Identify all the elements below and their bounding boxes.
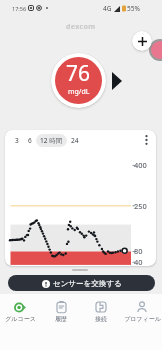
staticText: 接続 bbox=[95, 315, 107, 323]
button[interactable]: 履歴 bbox=[41, 294, 81, 350]
button[interactable]: More options bbox=[138, 132, 154, 148]
staticText: dexcom bbox=[66, 22, 96, 32]
staticText: 250 bbox=[134, 201, 147, 211]
staticText: mg/dL bbox=[68, 87, 90, 97]
button[interactable]: センサーを交換する bbox=[8, 275, 155, 291]
button[interactable]: 6 bbox=[27, 134, 33, 147]
staticText: 3 bbox=[15, 136, 19, 145]
button[interactable]: 接続 bbox=[81, 294, 121, 350]
staticText: 4G bbox=[103, 4, 112, 13]
staticText: 400 bbox=[134, 160, 147, 170]
button[interactable]: Profile bbox=[151, 41, 162, 59]
staticText: 17:56 bbox=[12, 5, 27, 12]
staticText: 80 bbox=[134, 246, 143, 256]
staticText: プロフィール bbox=[124, 315, 161, 323]
staticText: 24 bbox=[71, 136, 79, 145]
button[interactable]: プロフィール bbox=[122, 294, 162, 350]
staticText: 40 bbox=[134, 257, 143, 266]
button[interactable]: 12 時間 bbox=[36, 134, 67, 147]
button[interactable]: 3 bbox=[14, 134, 20, 147]
staticText: 6 bbox=[28, 136, 32, 145]
button[interactable]: グルコース bbox=[0, 294, 40, 350]
staticText: 76 bbox=[66, 59, 91, 88]
staticText: 履歴 bbox=[55, 315, 67, 323]
button[interactable]: 76 bbox=[55, 57, 102, 104]
button[interactable]: 24 bbox=[70, 134, 80, 147]
staticText: 12 時間 bbox=[40, 136, 63, 145]
staticText: センサーを交換する bbox=[53, 279, 122, 288]
staticText: 55% bbox=[127, 4, 140, 13]
button[interactable]: Add event bbox=[132, 31, 152, 51]
staticText: グルコース bbox=[5, 315, 36, 323]
